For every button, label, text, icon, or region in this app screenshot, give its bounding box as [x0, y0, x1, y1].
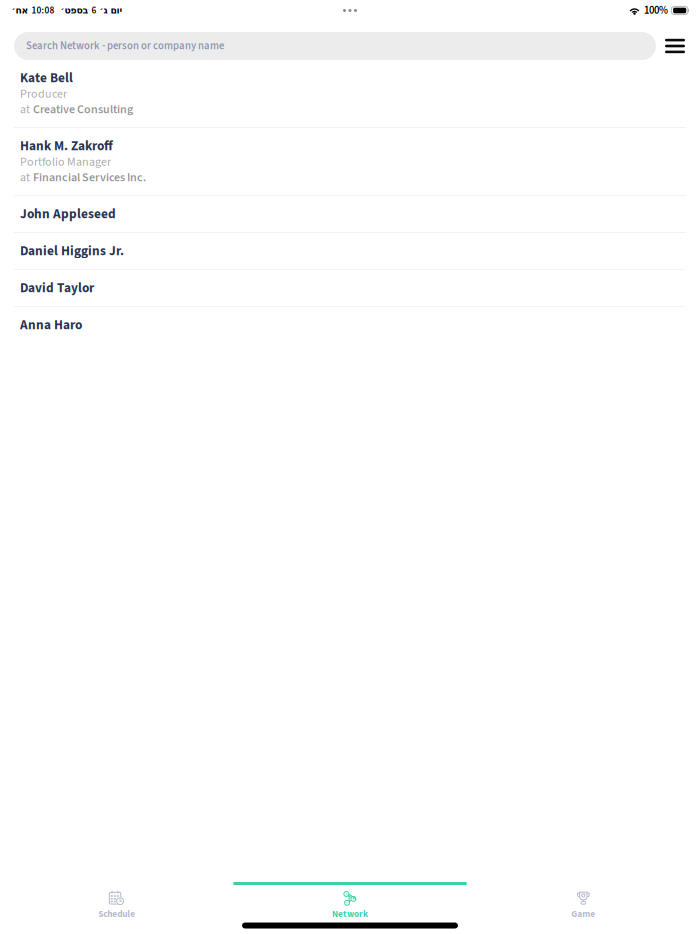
staticText: David Taylor: [20, 278, 94, 297]
button[interactable]: Daniel Higgins Jr.: [0, 233, 700, 269]
staticText: Search Network - person or company name: [26, 38, 224, 54]
button[interactable]: Anna Haro: [0, 307, 700, 343]
staticText: Anna Haro: [20, 315, 82, 334]
staticText: 100%: [644, 3, 668, 18]
staticText: John Appleseed: [20, 204, 116, 223]
staticText: Producer: [20, 85, 67, 103]
button[interactable]: David Taylor: [0, 270, 700, 306]
staticText: Daniel Higgins Jr.: [20, 241, 124, 260]
staticText: Portfolio Manager: [20, 153, 111, 171]
button[interactable]: Network: [233, 882, 467, 917]
staticText: Schedule: [98, 907, 135, 921]
button[interactable]: Hank M. Zakroff: [0, 128, 700, 195]
staticText: Kate Bell: [20, 68, 73, 87]
staticText: יום ג׳ 6 בספט׳ 10:08 אח׳: [11, 4, 122, 17]
staticText: Network: [332, 907, 368, 921]
button[interactable]: Search Network - person or company name: [14, 32, 656, 60]
staticText: Game: [571, 907, 595, 921]
button[interactable]: John Appleseed: [0, 196, 700, 232]
staticText: at: [20, 101, 30, 118]
staticText: Hank M. Zakroff: [20, 136, 113, 155]
staticText: at: [20, 169, 30, 186]
button[interactable]: Game: [467, 882, 700, 917]
button[interactable]: Schedule: [0, 882, 233, 917]
button[interactable]: Menu: [665, 32, 685, 60]
button[interactable]: Kate Bell: [0, 60, 700, 127]
staticText: Creative Consulting: [33, 101, 133, 118]
staticText: Financial Services Inc.: [33, 169, 146, 186]
